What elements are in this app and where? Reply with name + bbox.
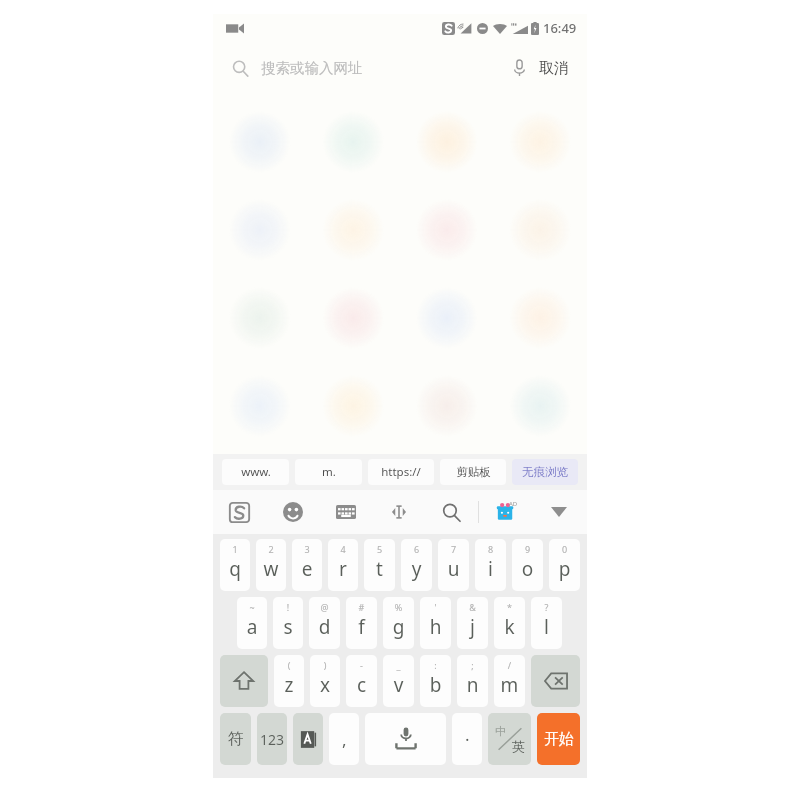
button[interactable]: Input language [293,713,323,765]
button[interactable]: 剪贴板 [440,459,506,485]
button[interactable]: Emoji [266,490,319,534]
staticText: 16:49 [543,19,577,37]
button[interactable]: ? [531,597,562,649]
staticText: 8 [475,543,506,555]
staticText: 5 [364,543,395,555]
staticText: % [383,601,414,613]
button[interactable]: / [494,655,525,707]
button[interactable]: , [329,713,359,765]
staticText: ' [420,601,451,613]
button[interactable]: Backspace [531,655,580,707]
button[interactable]: _ [383,655,414,707]
staticText: _ [383,659,414,671]
staticText: m [494,672,525,698]
button[interactable]: 无痕浏览 [512,459,578,485]
button[interactable]: 符 [220,713,251,765]
button[interactable]: 3 [292,539,322,591]
button[interactable]: * [494,597,525,649]
button[interactable]: % [383,597,414,649]
button[interactable]: ' [420,597,451,649]
staticText: k [494,614,525,640]
button[interactable]: · [452,713,482,765]
button[interactable]: Search [425,490,478,534]
staticText: 4 [328,543,358,555]
staticText: ( [274,659,304,671]
button[interactable]: 1 [220,539,250,591]
staticText: www. [241,464,271,480]
button[interactable]: - [346,655,377,707]
staticText: # [346,601,377,613]
staticText: https:// [381,464,421,480]
button[interactable]: Collapse keyboard [532,490,585,534]
button[interactable]: Keyboard layout [319,490,372,534]
button[interactable]: : [420,655,451,707]
staticText: ) [310,659,340,671]
staticText: ? [531,601,562,613]
button[interactable]: ! [273,597,303,649]
staticText: d [309,614,340,640]
staticText: 1 [220,543,250,555]
button[interactable]: 0 [549,539,580,591]
staticText: : [420,659,451,671]
button[interactable]: Advertisement [479,490,532,534]
staticText: & [457,601,488,613]
button[interactable]: 9 [512,539,543,591]
staticText: e [292,556,322,582]
staticText: a [237,614,267,640]
staticText: 英 [512,738,525,754]
staticText: ~ [237,601,267,613]
button[interactable]: 6 [401,539,432,591]
button[interactable]: m. [295,459,362,485]
staticText: t [364,556,395,582]
button[interactable]: Move cursor [372,490,425,534]
button[interactable]: Shift [220,655,268,707]
staticText: f [346,614,377,640]
staticText: 剪贴板 [456,465,491,479]
staticText: r [328,556,358,582]
staticText: * [494,601,525,613]
staticText: 符 [228,729,244,749]
button[interactable]: https:// [368,459,434,485]
button[interactable]: 2 [256,539,286,591]
button[interactable]: ~ [237,597,267,649]
staticText: v [383,672,414,698]
staticText: i [475,556,506,582]
button[interactable]: 8 [475,539,506,591]
button[interactable]: 搜索或输入网址 [213,42,499,94]
staticText: 9 [512,543,543,555]
button[interactable]: 取消 [539,59,569,78]
button[interactable]: @ [309,597,340,649]
staticText: y [401,556,432,582]
button[interactable]: ; [457,655,488,707]
staticText: ; [457,659,488,671]
staticText: 7 [438,543,469,555]
staticText: , [342,728,347,751]
staticText: b [420,672,451,698]
button[interactable]: 4 [328,539,358,591]
staticText: n [457,672,488,698]
button[interactable]: www. [222,459,289,485]
staticText: AD [509,500,518,508]
staticText: h [420,614,451,640]
button[interactable]: & [457,597,488,649]
button[interactable]: 开始 [537,713,580,765]
button[interactable]: ) [310,655,340,707]
button[interactable]: ( [274,655,304,707]
button[interactable]: 123 [257,713,287,765]
button[interactable]: 5 [364,539,395,591]
staticText: 中 [495,724,506,738]
button[interactable]: # [346,597,377,649]
staticText: 2 [256,543,286,555]
staticText: 123 [260,730,285,749]
button[interactable]: Voice search [499,48,539,88]
button[interactable]: Space / voice input [365,713,446,765]
button[interactable]: 7 [438,539,469,591]
staticText: 开始 [544,730,574,749]
staticText: 3 [292,543,322,555]
staticText: p [549,556,580,582]
button[interactable]: Sogou input [213,490,266,534]
staticText: - [346,659,377,671]
staticText: u [438,556,469,582]
staticText: 取消 [539,59,569,78]
button[interactable]: Chinese English toggle [488,713,531,765]
